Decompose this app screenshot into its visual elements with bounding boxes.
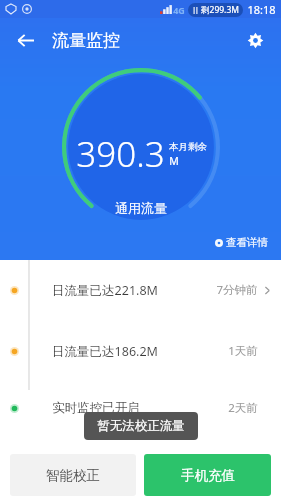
staticText: 剩299.3M <box>201 4 239 16</box>
staticText: 实时监控已开启 <box>52 400 140 416</box>
button[interactable]: 实时监控已开启 <box>0 394 281 422</box>
staticText: 4G <box>173 4 185 16</box>
staticText: 本月剩余 <box>169 141 207 153</box>
button[interactable]: 日流量已达186.2M <box>0 337 281 365</box>
staticText: 手机充值 <box>181 467 235 484</box>
button[interactable]: 日流量已达221.8M <box>0 276 281 304</box>
staticText: M <box>169 154 179 168</box>
staticText: 2天前 <box>228 400 258 416</box>
staticText: 1天前 <box>228 343 258 359</box>
staticText: 查看详情 <box>226 236 268 249</box>
staticText: 日流量已达221.8M <box>52 282 158 299</box>
button[interactable]: Back <box>8 23 42 57</box>
button[interactable]: 智能校正 <box>10 454 136 496</box>
button[interactable]: Settings <box>238 23 272 57</box>
button[interactable]: 手机充值 <box>144 454 271 496</box>
staticText: 390.3 <box>76 130 165 178</box>
staticText: 18:18 <box>247 2 276 17</box>
staticText: 7分钟前 <box>216 282 258 298</box>
staticText: 暂无法校正流量 <box>97 418 185 434</box>
staticText: 智能校正 <box>46 467 100 484</box>
button[interactable]: 查看详情 <box>212 234 271 251</box>
staticText: 流量监控 <box>52 30 120 51</box>
staticText: 日流量已达186.2M <box>52 343 158 360</box>
staticText: 通用流量 <box>115 200 167 216</box>
